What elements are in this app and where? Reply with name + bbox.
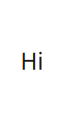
staticText: Hi — [20, 46, 43, 76]
